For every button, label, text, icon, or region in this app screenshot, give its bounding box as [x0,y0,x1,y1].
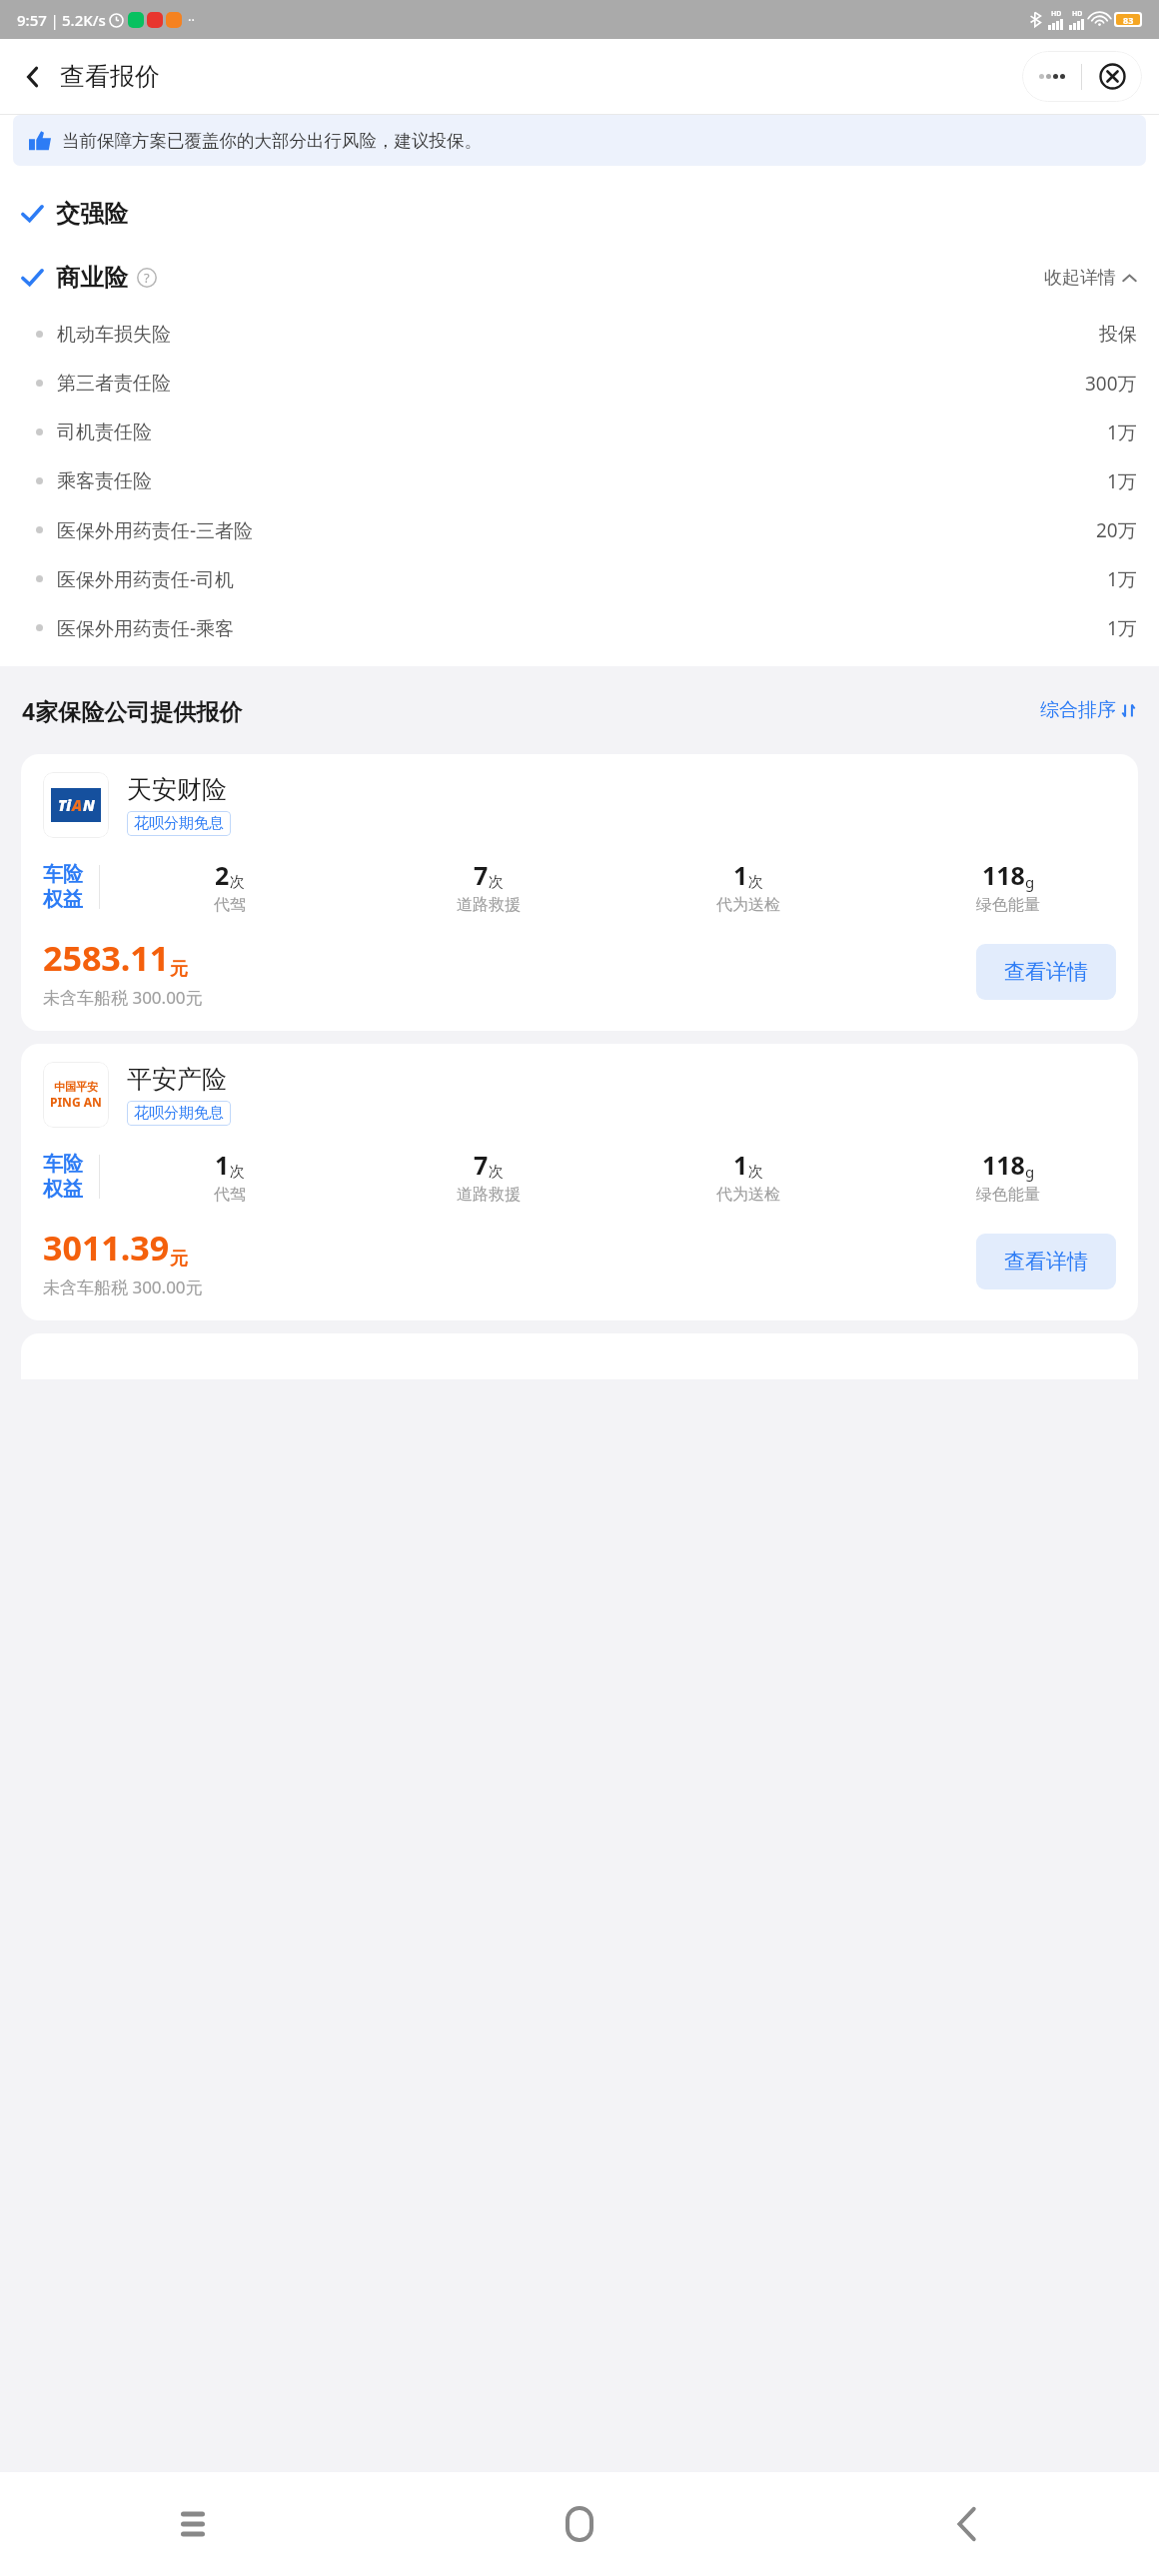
button[interactable]: 司机责任险 [0,408,1159,456]
staticText: 1 [215,1148,230,1182]
staticText: 7 [474,858,489,892]
staticText: 道路救援 [457,895,521,915]
button[interactable]: Ti [21,754,1138,1031]
staticText: 绿色能量 [976,895,1040,915]
button[interactable]: 乘客责任险 [0,456,1159,505]
staticText: 代为送检 [716,895,780,915]
button[interactable]: 中国平安 [21,1044,1138,1320]
staticText: 代驾 [214,895,246,915]
staticText: 未含车船税 300.00元 [43,1276,203,1298]
staticText: HD [1072,9,1083,19]
staticText: 交强险 [56,199,128,229]
staticText: 1万 [1107,420,1137,445]
staticText: 查看详情 [1004,959,1088,985]
staticText: 车险 [43,862,83,887]
button[interactable]: 查看详情 [976,1234,1116,1289]
staticText: 车险 [43,1152,83,1177]
button[interactable]: 查看详情 [976,944,1116,1000]
staticText: 118 [982,1148,1025,1182]
staticText: 机动车损失险 [57,323,171,347]
staticText: 医保外用药责任-三者险 [57,517,254,543]
button[interactable]: 商业险 [0,246,1159,310]
staticText: 9:57 [17,10,47,30]
staticText: 300万 [1085,371,1137,397]
staticText: 权益 [43,1177,83,1202]
staticText: ? [144,269,150,287]
button[interactable]: Close [1082,51,1142,102]
staticText: 元 [170,1248,188,1271]
staticText: 代驾 [214,1185,246,1205]
staticText: 1 [733,1148,748,1182]
staticText: 1 [733,858,748,892]
button[interactable]: Back [772,2472,1159,2576]
staticText: 医保外用药责任-乘客 [57,615,235,641]
staticText: 7 [474,1148,489,1182]
staticText: 花呗分期免息 [134,814,224,833]
staticText: 乘客责任险 [57,469,152,493]
staticText: 代为送检 [716,1185,780,1205]
staticText: 当前保障方案已覆盖你的大部分出行风险，建议投保。 [62,130,482,152]
button[interactable]: Recents [0,2472,386,2576]
button[interactable]: 收起详情 [1044,267,1137,290]
staticText: 花呗分期免息 [134,1104,224,1123]
staticText: 2583.11 [43,935,170,981]
staticText: 20万 [1096,517,1137,543]
button[interactable]: More [1022,51,1081,102]
button[interactable]: 第三者责任险 [0,359,1159,408]
staticText: g [1025,1162,1035,1182]
staticText: HD [1051,9,1062,19]
button[interactable]: 医保外用药责任-乘客 [0,603,1159,652]
staticText: 投保 [1099,323,1137,347]
staticText: 道路救援 [457,1185,521,1205]
staticText: 绿色能量 [976,1185,1040,1205]
staticText: 司机责任险 [57,421,152,444]
staticText: 1万 [1107,566,1137,592]
staticText: 2 [215,858,230,892]
staticText: 4家保险公司提供报价 [22,695,243,726]
staticText: g [1025,872,1035,892]
staticText: 3011.39 [43,1225,170,1271]
staticText: 医保外用药责任-司机 [57,566,235,592]
staticText: 中国平安 [54,1080,98,1094]
button[interactable]: 交强险 [0,182,1159,246]
staticText: ·· [188,11,195,29]
button[interactable]: Home [386,2472,772,2576]
staticText: 收起详情 [1044,267,1116,290]
staticText: 第三者责任险 [57,372,171,396]
staticText: 次 [489,1163,504,1182]
button[interactable]: 当前保障方案已覆盖你的大部分出行风险，建议投保。 [13,115,1146,166]
staticText: 次 [230,1163,245,1182]
button[interactable]: 机动车损失险 [0,310,1159,359]
staticText: 查看报价 [60,61,160,92]
staticText: 1万 [1107,468,1137,494]
button[interactable]: 医保外用药责任-司机 [0,554,1159,603]
button[interactable]: 综合排序 [1040,698,1137,722]
staticText: 综合排序 [1040,698,1116,722]
staticText: PING AN [50,1094,102,1110]
staticText: A [72,795,83,815]
staticText: | [47,11,62,30]
staticText: Ti [58,795,72,815]
button[interactable]: 医保外用药责任-三者险 [0,505,1159,554]
staticText: 平安产险 [127,1064,227,1095]
staticText: 次 [748,873,763,892]
staticText: 未含车船税 300.00元 [43,986,203,1009]
staticText: 次 [489,873,504,892]
staticText: 次 [748,1163,763,1182]
staticText: 天安财险 [127,774,227,805]
staticText: 查看详情 [1004,1249,1088,1275]
staticText: 118 [982,858,1025,892]
staticText: 5.2K/s [62,10,106,30]
staticText: 1万 [1107,615,1137,641]
button[interactable]: Back [14,58,52,96]
staticText: 元 [170,958,188,981]
staticText: 商业险 [56,263,128,293]
staticText: N [83,795,95,815]
staticText: 权益 [43,887,83,912]
staticText: 次 [230,873,245,892]
staticText: 83 [1123,14,1134,25]
